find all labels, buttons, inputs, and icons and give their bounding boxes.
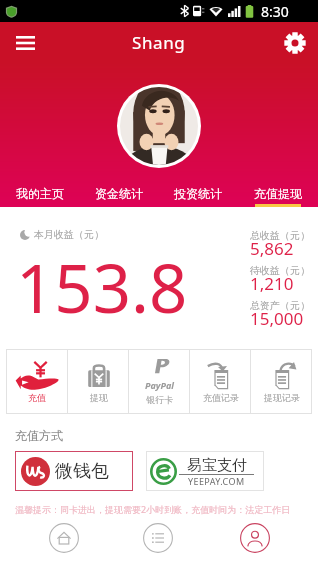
button[interactable]: Settings	[278, 26, 312, 60]
staticText: 充值记录	[203, 392, 239, 403]
staticText: 充值方式	[15, 428, 63, 443]
staticText: 温馨提示：同卡进出，提现需要2小时到账，充值时间为：法定工作日	[15, 503, 291, 515]
staticText: 投资统计	[174, 186, 222, 201]
button[interactable]: 资金统计	[79, 181, 158, 207]
button[interactable]: Profile	[233, 516, 277, 560]
button[interactable]: 总收益（元）	[250, 229, 310, 265]
staticText: 1,210	[250, 272, 294, 295]
staticText: 提现	[90, 392, 108, 403]
button[interactable]: 充值	[6, 349, 68, 414]
staticText: 易宝支付	[187, 456, 247, 475]
staticText: 待收益（元）	[250, 264, 310, 277]
button[interactable]: Profile photo	[120, 87, 198, 165]
button[interactable]: 总资产（元）	[250, 299, 310, 335]
staticText: 微钱包	[55, 460, 109, 483]
staticText: 银行卡	[146, 394, 173, 405]
staticText: PayPal	[145, 379, 174, 391]
staticText: 5,862	[250, 237, 294, 260]
staticText: 总收益（元）	[250, 229, 310, 242]
button[interactable]: 提现记录	[251, 349, 312, 414]
button[interactable]: 微钱包	[15, 451, 133, 491]
button[interactable]: Home	[42, 516, 86, 560]
staticText: 资金统计	[95, 186, 143, 201]
staticText: 总资产（元）	[250, 299, 310, 312]
staticText: 充值	[28, 392, 46, 403]
button[interactable]: 提现	[68, 349, 129, 414]
button[interactable]: 投资统计	[158, 181, 238, 207]
button[interactable]: 充值记录	[190, 349, 251, 414]
button[interactable]: PayPal	[129, 349, 190, 414]
staticText: 提现记录	[264, 392, 300, 403]
staticText: 153.8	[16, 241, 188, 332]
button[interactable]: List	[136, 516, 180, 560]
staticText: YEEPAY.COM	[188, 475, 245, 487]
staticText: 8:30	[261, 2, 289, 21]
staticText: 15,000	[250, 307, 304, 330]
staticText: Shang	[132, 31, 186, 54]
button[interactable]: Menu	[8, 26, 42, 60]
button[interactable]: 易宝支付	[146, 451, 264, 491]
button[interactable]: 我的主页	[0, 181, 79, 207]
staticText: 本月收益（元）	[34, 228, 104, 241]
button[interactable]: 待收益（元）	[250, 264, 310, 300]
staticText: 充值提现	[254, 186, 302, 201]
button[interactable]: 充值提现	[238, 181, 318, 207]
staticText: 我的主页	[16, 186, 64, 201]
